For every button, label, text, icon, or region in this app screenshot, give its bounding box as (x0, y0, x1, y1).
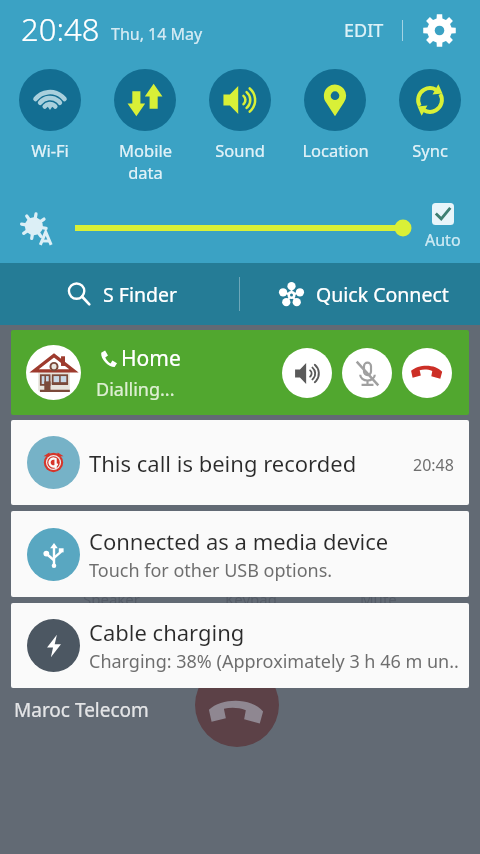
staticText: EDIT (344, 18, 384, 43)
button[interactable]: End call (402, 348, 452, 398)
staticText: Maroc Telecom (14, 697, 149, 723)
button[interactable]: Auto (422, 203, 464, 251)
button[interactable]: Location (290, 60, 380, 161)
button[interactable]: Sync (385, 60, 475, 161)
staticText: Thu, 14 May (111, 23, 203, 45)
staticText: S Finder (103, 281, 178, 308)
staticText: Wi-Fi (31, 139, 69, 161)
button[interactable]: Home (11, 330, 469, 415)
staticText: Touch for other USB options. (89, 558, 333, 583)
staticText: Sync (412, 139, 448, 161)
staticText: Keypad (225, 589, 277, 603)
staticText: This call is being recorded (89, 448, 357, 478)
staticText: Auto (425, 229, 461, 251)
staticText: Sound (215, 139, 265, 161)
staticText: Mute (360, 589, 397, 603)
button[interactable]: Mute (342, 348, 392, 398)
button[interactable]: Wi-Fi (5, 60, 95, 161)
staticText: Quick Connect (316, 281, 449, 308)
button[interactable]: S Finder (0, 263, 239, 325)
button[interactable]: This call is being recorded (11, 420, 469, 505)
staticText: Mobile data (119, 139, 172, 183)
button[interactable]: Settings (420, 11, 458, 49)
staticText: 20:48 (21, 8, 100, 50)
staticText: Home (121, 344, 181, 373)
staticText: Dialling... (96, 377, 175, 402)
staticText: Connected as a media device (89, 526, 389, 556)
staticText: Speaker (83, 589, 141, 603)
button[interactable]: Sound (195, 60, 285, 161)
button[interactable]: Mobile data (100, 60, 190, 183)
button[interactable]: Speaker (282, 348, 332, 398)
button[interactable]: Quick Connect (240, 263, 480, 325)
button[interactable]: EDIT (335, 9, 393, 52)
staticText: Cable charging (89, 617, 245, 647)
staticText: Location (302, 139, 369, 161)
button[interactable]: Cable charging (11, 603, 469, 688)
staticText: 20:48 (413, 454, 454, 476)
staticText: Charging: 38% (Approximately 3 h 46 m un… (89, 649, 459, 674)
button[interactable]: Connected as a media device (11, 511, 469, 597)
